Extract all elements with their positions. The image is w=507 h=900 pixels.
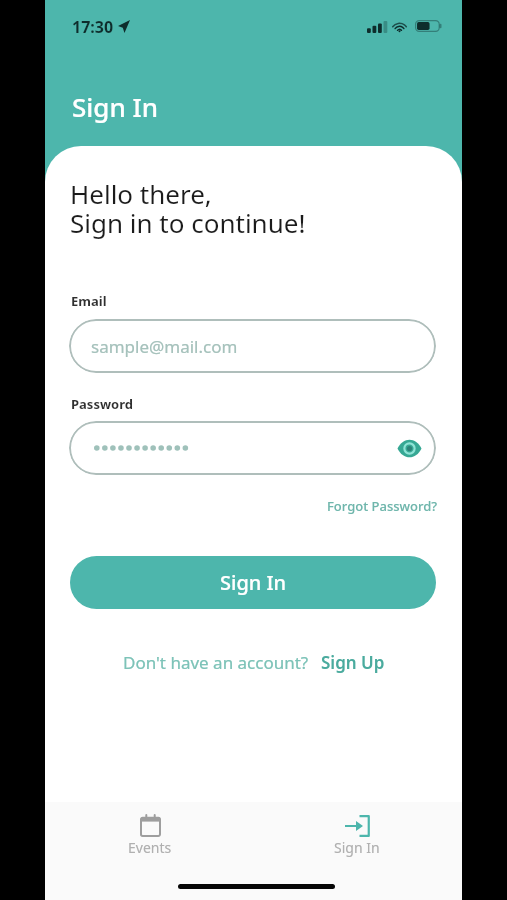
staticText: Sign In [220,569,287,596]
button[interactable]: sample@mail.com [69,319,436,373]
staticText: Password [71,395,133,413]
button[interactable]: Show password [69,421,436,475]
button[interactable]: Events [105,804,195,862]
staticText: 17:30 [72,16,114,38]
staticText: Sign In [334,838,380,857]
button[interactable]: Forgot Password? [327,497,438,515]
staticText: Sign In [72,89,159,124]
staticText: Don't have an account? [123,651,309,674]
staticText: sample@mail.com [91,335,238,358]
staticText: Email [71,292,107,310]
staticText: Events [128,838,172,857]
staticText: Sign Up [321,651,385,674]
staticText: Forgot Password? [327,497,438,515]
staticText: Hello there, Sign in to continue! [70,176,306,240]
button[interactable]: Sign In [312,804,402,862]
button[interactable]: Show password [391,430,427,466]
button[interactable]: Sign Up [321,651,385,674]
button[interactable]: Sign In [70,556,436,609]
